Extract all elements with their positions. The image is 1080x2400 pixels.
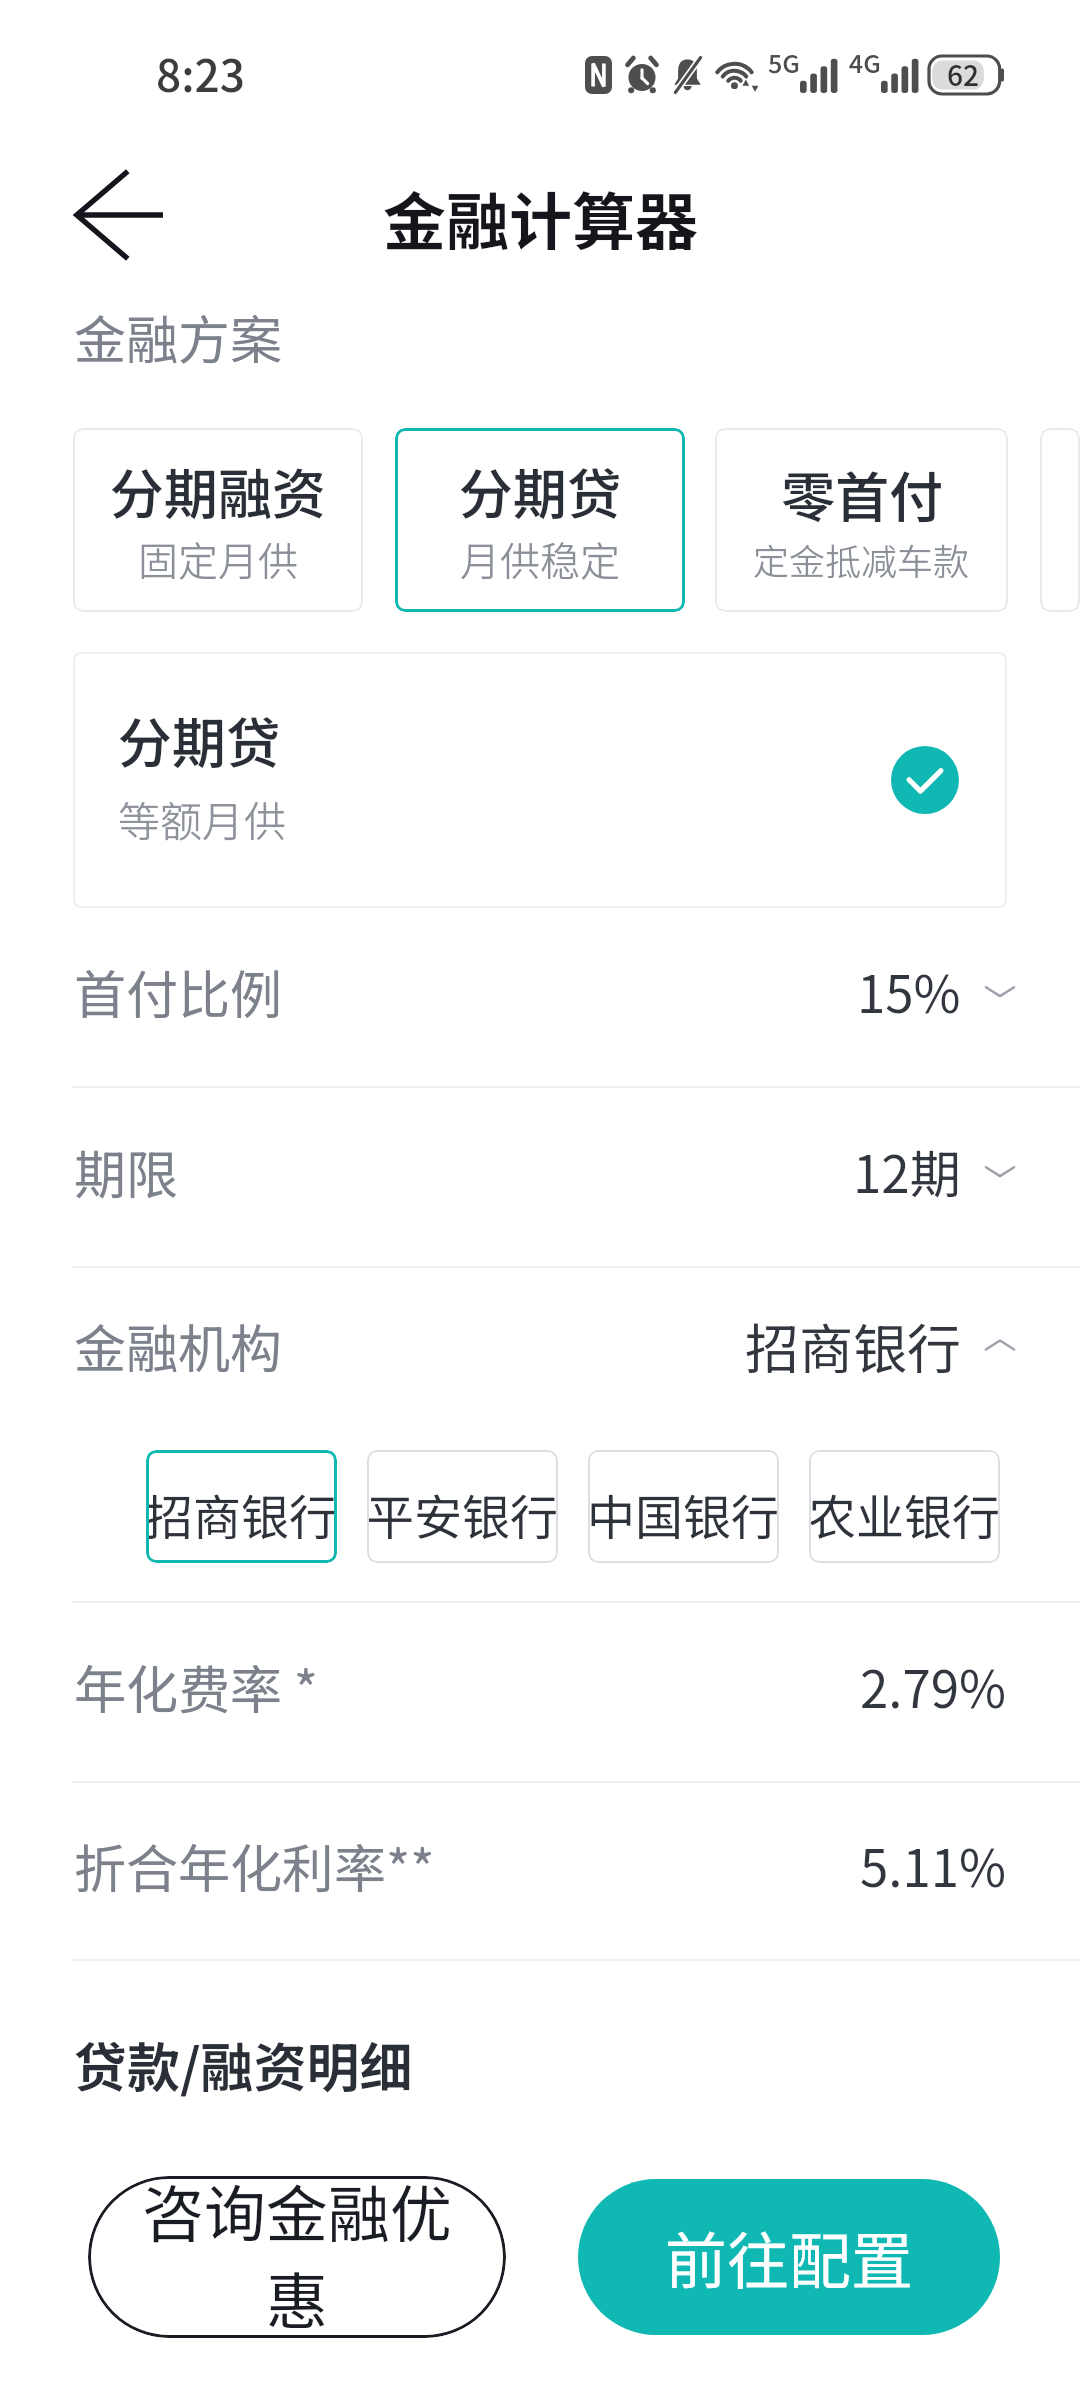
- button[interactable]: 咨询金融优惠: [88, 2176, 506, 2338]
- button[interactable]: 期限: [0, 1088, 1080, 1266]
- staticText: 咨询金融优惠: [141, 2176, 453, 2338]
- other: Selected: [891, 746, 959, 814]
- staticText: 8:23: [156, 41, 245, 105]
- staticText: 5.11%: [860, 1828, 1007, 1902]
- staticText: 零首付: [781, 454, 943, 532]
- staticText: 固定月供: [138, 530, 298, 588]
- staticText: 62: [947, 54, 980, 95]
- staticText: 首付比例: [74, 954, 283, 1029]
- staticText: 4G: [849, 44, 881, 80]
- staticText: 招商银行: [146, 1479, 337, 1549]
- button[interactable]: 零首付: [715, 428, 1008, 612]
- button[interactable]: 折合年化利率**: [0, 1783, 1080, 1959]
- staticText: 分期贷: [459, 451, 621, 529]
- button[interactable]: 农业银行: [809, 1450, 1000, 1563]
- staticText: 分期融资: [110, 451, 326, 529]
- staticText: 折合年化利率**: [74, 1828, 435, 1903]
- staticText: 平安银行: [367, 1479, 558, 1549]
- staticText: 12期: [853, 1134, 961, 1208]
- button[interactable]: 分期贷: [395, 428, 685, 612]
- staticText: 5G: [768, 44, 800, 80]
- staticText: 金融方案: [74, 299, 283, 374]
- staticText: 金融计算器: [383, 172, 698, 263]
- staticText: 15%: [857, 954, 961, 1028]
- button[interactable]: 招商银行: [146, 1450, 337, 1563]
- staticText: 等额月供: [118, 788, 287, 849]
- staticText: 月供稳定: [460, 530, 620, 588]
- button[interactable]: 首付比例: [0, 908, 1080, 1086]
- staticText: 分期贷: [118, 700, 280, 778]
- button[interactable]: 金融机构: [0, 1268, 1080, 1434]
- staticText: 2.79%: [860, 1649, 1007, 1723]
- staticText: 期限: [74, 1134, 179, 1209]
- staticText: 金融机构: [74, 1308, 283, 1383]
- staticText: 招商银行: [745, 1306, 961, 1384]
- button[interactable]: 中国银行: [588, 1450, 779, 1563]
- staticText: 贷款/融资明细: [74, 2026, 413, 2103]
- button[interactable]: 分期融资: [73, 428, 363, 612]
- button[interactable]: Back: [60, 156, 178, 274]
- staticText: 年化费率 *: [74, 1649, 318, 1724]
- button[interactable]: 前往配置: [578, 2179, 1000, 2335]
- staticText: 定金抵减车款: [753, 533, 970, 585]
- button[interactable]: 年化费率 *: [0, 1603, 1080, 1781]
- staticText: 农业银行: [809, 1479, 1000, 1549]
- staticText: 中国银行: [588, 1479, 779, 1549]
- button[interactable]: 分期贷: [73, 652, 1007, 908]
- button[interactable]: [1040, 428, 1080, 612]
- staticText: 前往配置: [665, 2212, 914, 2302]
- button[interactable]: 平安银行: [367, 1450, 558, 1563]
